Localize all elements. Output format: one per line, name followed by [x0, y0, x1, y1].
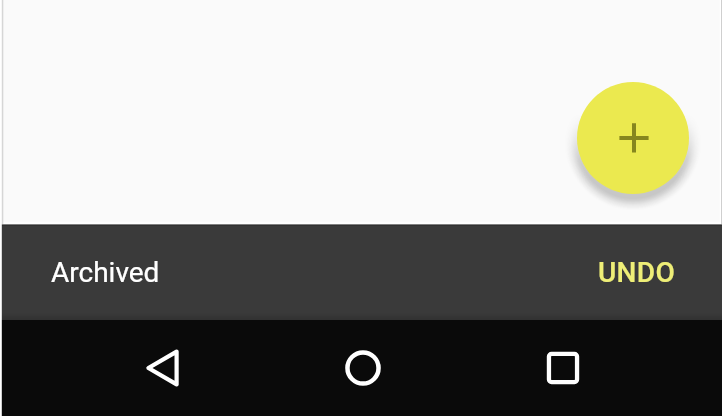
- button[interactable]: Recent apps: [522, 320, 603, 416]
- staticText: Archived: [51, 256, 160, 289]
- button[interactable]: Back: [122, 320, 203, 416]
- button[interactable]: Home: [322, 320, 403, 416]
- button[interactable]: UNDO: [568, 224, 722, 320]
- staticText: UNDO: [598, 256, 676, 289]
- button[interactable]: Add: [577, 82, 689, 194]
